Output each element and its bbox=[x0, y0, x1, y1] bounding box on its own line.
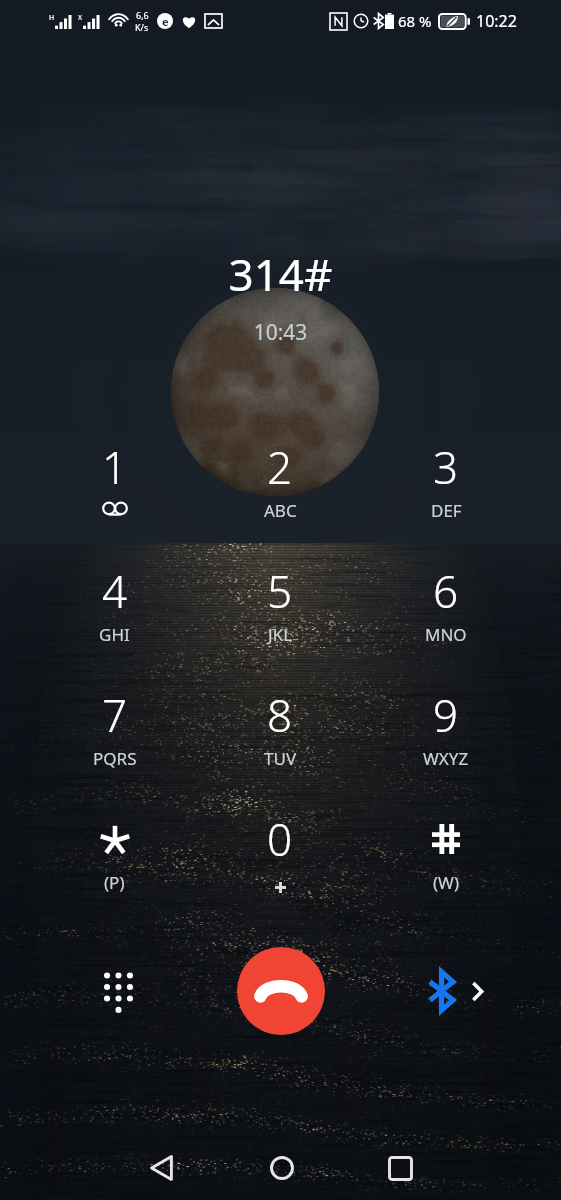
button[interactable]: End call bbox=[237, 947, 325, 1035]
button[interactable]: 0 bbox=[197, 781, 363, 905]
button[interactable]: (W) bbox=[363, 781, 529, 905]
staticText: 10:22 bbox=[476, 10, 517, 32]
staticText: 6 bbox=[433, 561, 459, 621]
button[interactable]: (P) bbox=[32, 781, 197, 905]
staticText: 5 bbox=[267, 561, 293, 621]
staticText: e bbox=[162, 14, 169, 29]
staticText: 1 bbox=[102, 437, 128, 497]
staticText: 314# bbox=[0, 244, 561, 304]
staticText: ABC bbox=[264, 499, 297, 522]
staticText: 68 % bbox=[398, 11, 432, 31]
staticText: 10:43 bbox=[0, 318, 561, 347]
button[interactable]: Recent apps bbox=[376, 1144, 424, 1192]
staticText: GHI bbox=[99, 623, 130, 646]
button[interactable]: 8 bbox=[197, 657, 363, 781]
button[interactable]: 7 bbox=[32, 657, 197, 781]
button[interactable]: 6 bbox=[363, 533, 529, 657]
staticText: TUV bbox=[264, 747, 297, 770]
staticText: (W) bbox=[433, 871, 460, 894]
staticText: K/s bbox=[135, 21, 149, 33]
staticText: 4 bbox=[102, 561, 128, 621]
staticText: PQRS bbox=[93, 747, 137, 770]
staticText: WXYZ bbox=[423, 747, 469, 770]
staticText: JKL bbox=[268, 623, 293, 646]
staticText: 9 bbox=[433, 685, 459, 745]
button[interactable]: 3 bbox=[363, 409, 529, 533]
button[interactable]: 5 bbox=[197, 533, 363, 657]
staticText: X bbox=[78, 13, 83, 23]
button[interactable]: 9 bbox=[363, 657, 529, 781]
staticText: DEF bbox=[431, 499, 462, 522]
button[interactable]: Home bbox=[258, 1144, 306, 1192]
staticText: 8 bbox=[267, 685, 293, 745]
button[interactable]: Bluetooth audio bbox=[417, 967, 465, 1015]
staticText: 6,6 bbox=[136, 9, 149, 21]
staticText: 7 bbox=[102, 685, 128, 745]
button[interactable]: 1 bbox=[32, 409, 197, 533]
staticText: 2 bbox=[267, 437, 293, 497]
staticText: H bbox=[49, 13, 55, 23]
staticText: 3 bbox=[433, 437, 459, 497]
staticText: 0 bbox=[267, 809, 293, 869]
button[interactable]: 2 bbox=[197, 409, 363, 533]
button[interactable]: Show dialpad bbox=[88, 961, 148, 1021]
button[interactable]: 4 bbox=[32, 533, 197, 657]
staticText: (P) bbox=[104, 871, 125, 894]
staticText: MNO bbox=[425, 623, 467, 646]
button[interactable]: Back bbox=[137, 1144, 185, 1192]
